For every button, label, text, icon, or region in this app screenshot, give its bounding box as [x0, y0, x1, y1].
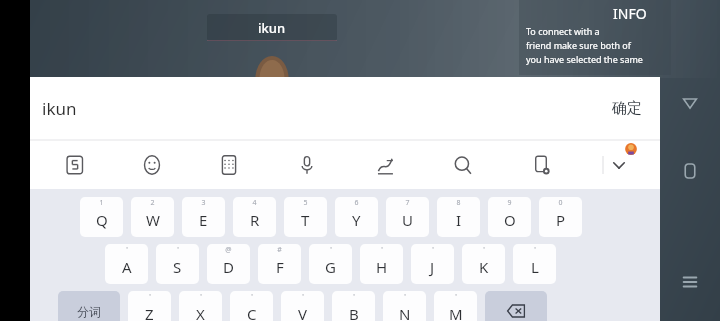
staticText: 2 [150, 198, 155, 208]
staticText: T [301, 210, 310, 230]
staticText: ' [353, 292, 355, 302]
button[interactable]: Hide keyboard [580, 141, 658, 189]
staticText: J [430, 257, 435, 277]
staticText: ' [200, 292, 202, 302]
staticText: ' [432, 245, 434, 255]
staticText: To connect with a [526, 25, 600, 37]
staticText: 0 [558, 198, 563, 208]
staticText: N [399, 304, 411, 321]
staticText: 3 [201, 198, 206, 208]
staticText: B [349, 304, 359, 321]
button[interactable]: Back [675, 88, 705, 118]
button[interactable]: ' [156, 244, 199, 284]
button[interactable]: ' [383, 291, 426, 321]
staticText: K [479, 257, 489, 277]
staticText: ' [302, 292, 304, 302]
staticText: ikun [258, 19, 286, 37]
staticText: 4 [252, 198, 257, 208]
staticText: ' [149, 292, 151, 302]
button[interactable]: ' [105, 244, 148, 284]
staticText: ' [251, 292, 253, 302]
staticText: Q [96, 210, 108, 230]
button[interactable]: 3 [182, 197, 225, 237]
button[interactable]: ' [411, 244, 454, 284]
button[interactable]: Handwriting [346, 141, 424, 189]
button[interactable]: ' [230, 291, 273, 321]
button[interactable]: Keyboard layout [190, 141, 268, 189]
button[interactable]: 0 [539, 197, 582, 237]
staticText: O [504, 210, 516, 230]
button[interactable]: ' [434, 291, 477, 321]
staticText: ' [177, 245, 179, 255]
staticText: ' [404, 292, 406, 302]
button[interactable]: 1 [80, 197, 123, 237]
staticText: 1 [99, 198, 104, 208]
button[interactable]: ' [360, 244, 403, 284]
staticText: ikun [42, 97, 77, 120]
staticText: ' [455, 292, 457, 302]
staticText: M [449, 304, 463, 321]
staticText: F [276, 257, 284, 277]
staticText: ' [534, 245, 536, 255]
button[interactable]: 分词 [58, 291, 120, 321]
staticText: R [250, 210, 260, 230]
staticText: ' [330, 245, 332, 255]
staticText: A [122, 257, 132, 277]
button[interactable]: Sogou [36, 141, 113, 189]
button[interactable]: 2 [131, 197, 174, 237]
staticText: E [199, 210, 208, 230]
button[interactable]: 5 [284, 197, 327, 237]
button[interactable]: 6 [335, 197, 378, 237]
staticText: L [531, 257, 539, 277]
button[interactable]: Backspace [485, 291, 547, 321]
staticText: 9 [507, 198, 512, 208]
staticText: W [146, 210, 160, 230]
staticText: I [456, 210, 462, 230]
button[interactable]: ' [281, 291, 324, 321]
staticText: # [277, 245, 282, 255]
staticText: G [325, 257, 336, 277]
button[interactable]: Clipboard [502, 141, 580, 189]
staticText: @ [225, 245, 232, 255]
button[interactable]: INFO [519, 0, 671, 75]
staticText: 确定 [612, 99, 642, 118]
staticText: 7 [405, 198, 410, 208]
staticText: 分词 [77, 304, 101, 319]
button[interactable]: 确定 [604, 93, 650, 124]
button[interactable]: Home [675, 156, 705, 186]
button[interactable]: ' [513, 244, 556, 284]
staticText: H [376, 257, 388, 277]
button[interactable]: ' [332, 291, 375, 321]
staticText: 8 [456, 198, 461, 208]
staticText: Y [352, 210, 361, 230]
staticText: 5 [303, 198, 308, 208]
staticText: you have selected the same [526, 53, 643, 65]
button[interactable]: # [258, 244, 301, 284]
button[interactable]: 8 [437, 197, 480, 237]
staticText: S [173, 257, 182, 277]
button[interactable]: ikun [207, 14, 337, 41]
button[interactable]: Search [424, 141, 502, 189]
staticText: friend make sure both of [526, 39, 631, 51]
staticText: U [402, 210, 413, 230]
button[interactable]: Voice input [268, 141, 346, 189]
staticText: ' [483, 245, 485, 255]
staticText: C [247, 304, 257, 321]
button[interactable]: Recent apps [675, 267, 705, 297]
button[interactable]: ' [179, 291, 222, 321]
staticText: 6 [354, 198, 359, 208]
button[interactable]: 7 [386, 197, 429, 237]
button[interactable]: Emoji [113, 141, 190, 189]
button[interactable]: 9 [488, 197, 531, 237]
button[interactable]: 4 [233, 197, 276, 237]
staticText: P [556, 210, 566, 230]
button[interactable]: ' [128, 291, 171, 321]
button[interactable]: ' [309, 244, 352, 284]
staticText: X [196, 304, 205, 321]
staticText: ' [126, 245, 128, 255]
staticText: D [223, 257, 234, 277]
button[interactable]: @ [207, 244, 250, 284]
staticText: INFO [613, 4, 647, 23]
staticText: V [298, 304, 308, 321]
button[interactable]: ' [462, 244, 505, 284]
